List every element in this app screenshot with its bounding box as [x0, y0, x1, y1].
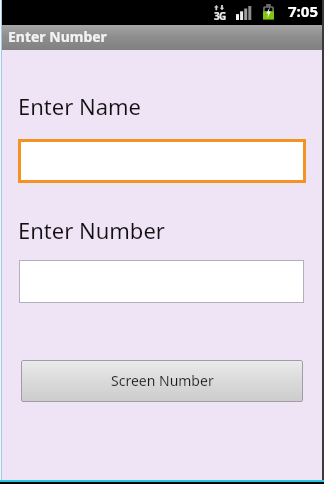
button[interactable]	[18, 139, 306, 183]
button[interactable]	[19, 260, 304, 303]
button[interactable]: Enter Number	[0, 25, 322, 50]
button[interactable]: Screen Number	[21, 360, 303, 402]
staticText: Enter Name	[18, 91, 142, 121]
staticText: Enter Number	[8, 27, 107, 46]
staticText: 3G	[214, 9, 226, 23]
other: Signal strength	[236, 6, 252, 20]
staticText: Enter Number	[18, 215, 165, 245]
staticText: Screen Number	[111, 371, 214, 390]
other: 3G data	[214, 5, 225, 11]
staticText: 7:05	[288, 1, 318, 21]
other: Battery charging	[263, 4, 275, 20]
